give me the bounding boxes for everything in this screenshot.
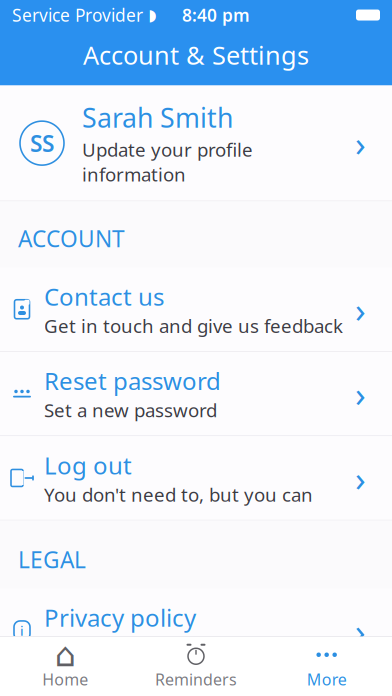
button[interactable]: Reminders	[131, 637, 261, 696]
staticText: ›	[355, 120, 366, 166]
staticText: Account & Settings	[83, 38, 309, 72]
staticText: i	[20, 622, 24, 639]
staticText: Update your profile information	[82, 137, 253, 187]
button[interactable]: Log out	[0, 436, 392, 521]
staticText: ›	[355, 607, 366, 653]
staticText: Contact us	[44, 280, 164, 312]
staticText: View our privacy policy	[44, 634, 244, 659]
staticText: You don't need to, but you can	[44, 482, 313, 507]
staticText: ›	[355, 371, 366, 417]
staticText: 8:40 pm	[182, 3, 250, 26]
button[interactable]: Reset password	[0, 352, 392, 436]
staticText: ◗	[148, 6, 156, 24]
staticText: ⌂	[55, 636, 76, 674]
button[interactable]: Contact us	[0, 267, 392, 352]
staticText: ACCOUNT	[18, 223, 125, 253]
staticText: Service Provider	[12, 3, 143, 26]
button[interactable]: i	[0, 589, 392, 673]
staticText: LEGAL	[18, 544, 86, 575]
staticText: Home	[42, 669, 88, 690]
staticText: Sarah Smith	[82, 100, 233, 135]
staticText: More	[307, 669, 347, 690]
staticText: Reminders	[155, 669, 237, 690]
staticText: Privacy policy	[44, 602, 196, 633]
button[interactable]: ✓	[0, 673, 392, 696]
button[interactable]: More	[261, 637, 392, 696]
staticText: Set a new password	[44, 398, 217, 422]
staticText: ›	[355, 455, 366, 501]
button[interactable]: ⌂	[0, 637, 131, 696]
staticText: ›	[355, 286, 366, 332]
button[interactable]: SS	[0, 86, 392, 201]
staticText: Log out	[44, 449, 132, 481]
staticText: Reset password	[44, 365, 221, 397]
staticText: Get in touch and give us feedback	[44, 313, 343, 338]
staticText: SS	[30, 128, 54, 158]
